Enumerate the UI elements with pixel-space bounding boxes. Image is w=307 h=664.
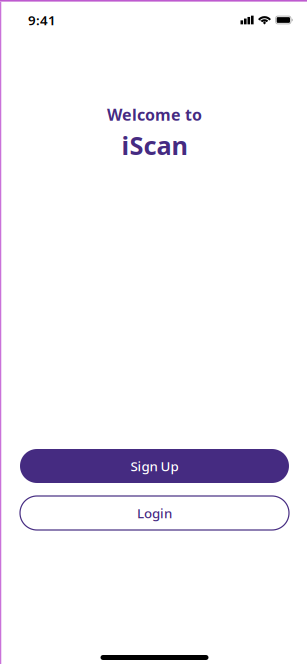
button[interactable]: Sign Up bbox=[20, 449, 289, 483]
staticText: 9:41 bbox=[28, 11, 56, 29]
staticText: Sign Up bbox=[130, 457, 178, 475]
staticText: Welcome to bbox=[107, 104, 202, 125]
button[interactable]: Login bbox=[20, 496, 289, 530]
staticText: Login bbox=[137, 504, 172, 522]
staticText: iScan bbox=[121, 128, 187, 162]
